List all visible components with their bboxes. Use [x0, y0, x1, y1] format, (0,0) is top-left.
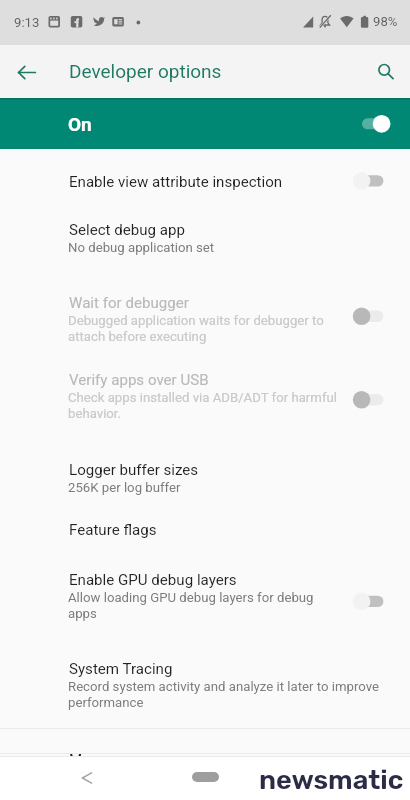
staticText: Memory	[69, 751, 125, 769]
button[interactable]: Navigate up	[5, 50, 49, 94]
button[interactable]: On	[0, 98, 410, 149]
button[interactable]: System Tracing	[0, 652, 410, 709]
staticText: On	[68, 113, 92, 135]
button[interactable]: Select debug app	[0, 213, 410, 253]
button[interactable]: Back	[67, 758, 107, 798]
button[interactable]: Wait for debugger	[0, 286, 410, 343]
staticText: No debug application set	[68, 240, 215, 255]
button[interactable]: Enable GPU debug layers	[0, 563, 410, 620]
staticText: System Tracing	[69, 660, 173, 678]
staticText: 256K per log buffer	[68, 480, 181, 495]
staticText: Verify apps over USB	[69, 371, 209, 389]
staticText: Developer options	[69, 60, 222, 82]
staticText: performance	[68, 695, 144, 710]
staticText: Wait for debugger	[69, 294, 189, 312]
button[interactable]: Search	[363, 50, 407, 94]
staticText: apps	[68, 606, 97, 621]
staticText: attach before executing	[68, 329, 207, 344]
staticText: Select debug app	[69, 221, 185, 239]
staticText: Logger buffer sizes	[69, 461, 199, 479]
staticText: Record system activity and analyze it la…	[68, 679, 379, 694]
staticText: Feature flags	[69, 521, 157, 539]
button[interactable]: Logger buffer sizes	[0, 453, 410, 493]
staticText: behavior.	[68, 406, 122, 421]
button[interactable]: Home	[192, 772, 219, 782]
staticText: Enable view attribute inspection	[69, 173, 283, 191]
staticText: Check apps installed via ADB/ADT for har…	[68, 390, 337, 405]
staticText: 9:13	[14, 15, 40, 30]
button[interactable]: Feature flags	[0, 513, 410, 537]
staticText: newsmatic	[259, 764, 404, 796]
staticText: Enable GPU debug layers	[69, 571, 237, 589]
button[interactable]: Enable view attribute inspection	[0, 165, 410, 189]
staticText: Allow loading GPU debug layers for debug	[68, 590, 314, 605]
staticText: Debugged application waits for debugger …	[68, 313, 324, 328]
button[interactable]: Verify apps over USB	[0, 363, 410, 420]
staticText: 98%	[373, 14, 398, 29]
